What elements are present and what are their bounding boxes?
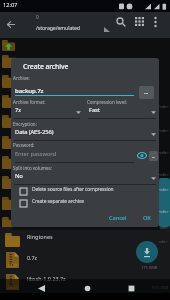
button[interactable] [153, 16, 158, 28]
staticText: No [15, 172, 23, 180]
staticText: 973.3MB [152, 285, 169, 290]
button[interactable] [38, 285, 45, 292]
staticText: /storage/emulated [36, 24, 80, 31]
staticText: Data (AES-256) [15, 128, 54, 136]
button[interactable] [128, 285, 135, 292]
staticText: Compression level: [87, 99, 127, 105]
button[interactable] [20, 198, 140, 209]
staticText: <dir> [159, 187, 169, 192]
button[interactable] [7, 21, 15, 28]
button[interactable] [11, 171, 157, 185]
button[interactable]: Cancel [103, 211, 133, 224]
staticText: Archive: [13, 75, 30, 81]
staticText: <dir> [159, 209, 169, 214]
staticText: 175.0MB [141, 265, 158, 270]
button[interactable] [11, 127, 157, 141]
staticText: 0 [36, 14, 39, 20]
staticText: Ringtones [27, 233, 53, 240]
staticText: Fast [89, 106, 100, 114]
button[interactable] [0, 250, 170, 271]
staticText: <dir> [158, 239, 168, 244]
staticText: <dir> [159, 150, 169, 155]
staticText: libssh-1.0.23.7z [27, 275, 66, 282]
staticText: 0.7z [27, 254, 38, 261]
staticText: <dir> [159, 172, 169, 177]
staticText: Enter password [15, 150, 56, 158]
staticText: OK [143, 214, 151, 222]
button[interactable] [20, 186, 140, 197]
staticText: <dir> [159, 104, 169, 109]
staticText: Archive format: [13, 99, 46, 105]
button[interactable] [84, 285, 91, 292]
staticText: 12:07 [3, 1, 18, 9]
button[interactable] [11, 105, 81, 119]
staticText: 7z [9, 262, 14, 268]
staticText: ... [152, 154, 155, 159]
button[interactable] [135, 17, 145, 27]
staticText: backup.7z [15, 86, 44, 94]
button[interactable] [14, 84, 133, 97]
staticText: Cancel [109, 214, 127, 222]
staticText: Split into volumes: [13, 165, 52, 171]
button[interactable] [14, 149, 133, 162]
staticText: Delete source files after compression [32, 186, 114, 193]
staticText: 7z [15, 106, 21, 114]
button[interactable] [85, 105, 157, 119]
staticText: ... [144, 89, 149, 96]
staticText: <dir> [159, 128, 169, 133]
staticText: 7z [9, 283, 14, 289]
button[interactable] [116, 17, 126, 27]
button[interactable]: OK [138, 211, 156, 224]
staticText: Encryption: [13, 121, 37, 127]
button[interactable] [0, 229, 170, 249]
button[interactable]: ... [149, 151, 158, 161]
button[interactable]: ... [139, 86, 154, 99]
button[interactable] [137, 152, 147, 159]
staticText: <dir> [159, 225, 169, 230]
staticText: Create separate archive [32, 198, 84, 205]
button[interactable] [136, 241, 158, 263]
button[interactable] [0, 271, 170, 292]
staticText: Password: [13, 142, 35, 148]
staticText: Create archive [23, 62, 69, 71]
